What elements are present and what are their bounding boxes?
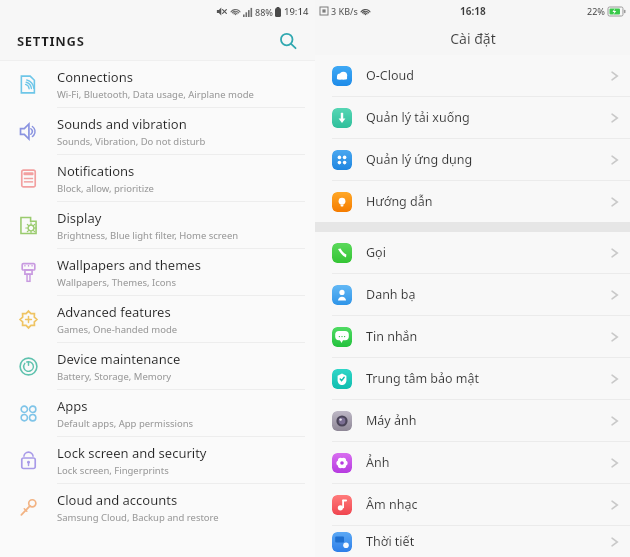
staticText: Connections — [57, 68, 133, 86]
staticText: Wallpapers, Themes, Icons — [57, 276, 177, 289]
button[interactable]: Quản lý ứng dụng — [315, 139, 630, 181]
button[interactable]: Hướng dẫn — [315, 181, 630, 222]
button[interactable]: Connections — [0, 61, 315, 108]
staticText: Ảnh — [366, 454, 611, 471]
staticText: O-Cloud — [366, 67, 611, 84]
staticText: Trung tâm bảo mật — [366, 370, 611, 387]
staticText: Sounds and vibration — [57, 115, 187, 133]
button[interactable]: Sounds and vibration — [0, 108, 315, 155]
staticText: 19:14 — [284, 5, 309, 18]
staticText: Device maintenance — [57, 350, 181, 368]
button[interactable]: Quản lý tải xuống — [315, 97, 630, 139]
staticText: Âm nhạc — [366, 496, 611, 513]
staticText: 88% — [255, 6, 273, 18]
staticText: Lock screen, Fingerprints — [57, 464, 169, 477]
staticText: Samsung Cloud, Backup and restore — [57, 511, 219, 524]
staticText: Block, allow, prioritize — [57, 182, 154, 195]
staticText: Tin nhắn — [366, 328, 611, 345]
staticText: Cài đặt — [450, 29, 496, 48]
button[interactable]: Danh bạ — [315, 274, 630, 316]
staticText: Wi-Fi, Bluetooth, Data usage, Airplane m… — [57, 88, 254, 101]
staticText: Battery, Storage, Memory — [57, 370, 172, 383]
staticText: Apps — [57, 397, 88, 415]
button[interactable]: Âm nhạc — [315, 484, 630, 526]
button[interactable]: Máy ảnh — [315, 400, 630, 442]
staticText: Lock screen and security — [57, 444, 207, 462]
staticText: Display — [57, 209, 102, 227]
staticText: SETTINGS — [17, 32, 85, 50]
button[interactable]: O-Cloud — [315, 55, 630, 97]
button[interactable]: Advanced features — [0, 296, 315, 343]
button[interactable]: Ảnh — [315, 442, 630, 484]
button[interactable]: Wallpapers and themes — [0, 249, 315, 296]
staticText: Brightness, Blue light filter, Home scre… — [57, 229, 239, 242]
button[interactable]: Apps — [0, 390, 315, 437]
staticText: Cloud and accounts — [57, 491, 178, 509]
staticText: Hướng dẫn — [366, 193, 611, 210]
button[interactable]: Cloud and accounts — [0, 484, 315, 530]
staticText: Máy ảnh — [366, 412, 611, 429]
button[interactable]: Display — [0, 202, 315, 249]
staticText: Games, One-handed mode — [57, 323, 178, 336]
staticText: 3 KB/s — [331, 5, 358, 17]
staticText: Sounds, Vibration, Do not disturb — [57, 135, 206, 148]
button[interactable]: Lock screen and security — [0, 437, 315, 484]
staticText: Thời tiết — [366, 533, 611, 550]
staticText: 22% — [587, 5, 605, 17]
staticText: Default apps, App permissions — [57, 417, 194, 430]
button[interactable]: Search — [273, 26, 303, 56]
staticText: Quản lý tải xuống — [366, 109, 611, 126]
staticText: Notifications — [57, 162, 135, 180]
staticText: 16:18 — [460, 4, 486, 18]
button[interactable]: Thời tiết — [315, 526, 630, 557]
staticText: Danh bạ — [366, 286, 611, 303]
staticText: Gọi — [366, 244, 611, 261]
button[interactable]: Device maintenance — [0, 343, 315, 390]
staticText: Advanced features — [57, 303, 171, 321]
button[interactable]: Trung tâm bảo mật — [315, 358, 630, 400]
staticText: Wallpapers and themes — [57, 256, 201, 274]
button[interactable]: Notifications — [0, 155, 315, 202]
button[interactable]: Gọi — [315, 232, 630, 274]
staticText: Quản lý ứng dụng — [366, 151, 611, 168]
button[interactable]: Tin nhắn — [315, 316, 630, 358]
